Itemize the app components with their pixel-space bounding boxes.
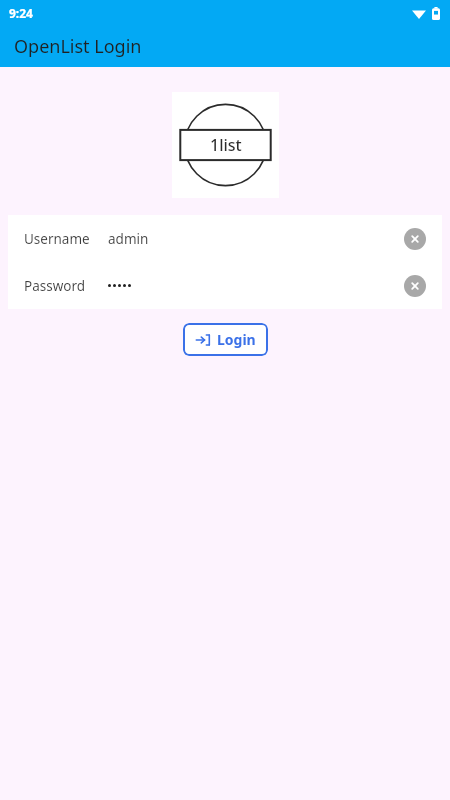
button[interactable]: Username: [8, 215, 442, 262]
staticText: Password: [24, 277, 86, 295]
button[interactable]: Clear Username: [404, 228, 426, 250]
button[interactable]: Clear Password: [404, 275, 426, 297]
staticText: Username: [24, 230, 90, 248]
staticText: Login: [217, 330, 256, 349]
button[interactable]: Login: [183, 323, 268, 356]
staticText: OpenList Login: [14, 34, 142, 59]
staticText: 9:24: [9, 5, 33, 21]
staticText: admin: [108, 230, 149, 248]
button[interactable]: Password: [8, 262, 442, 309]
staticText: 1list: [210, 134, 242, 156]
